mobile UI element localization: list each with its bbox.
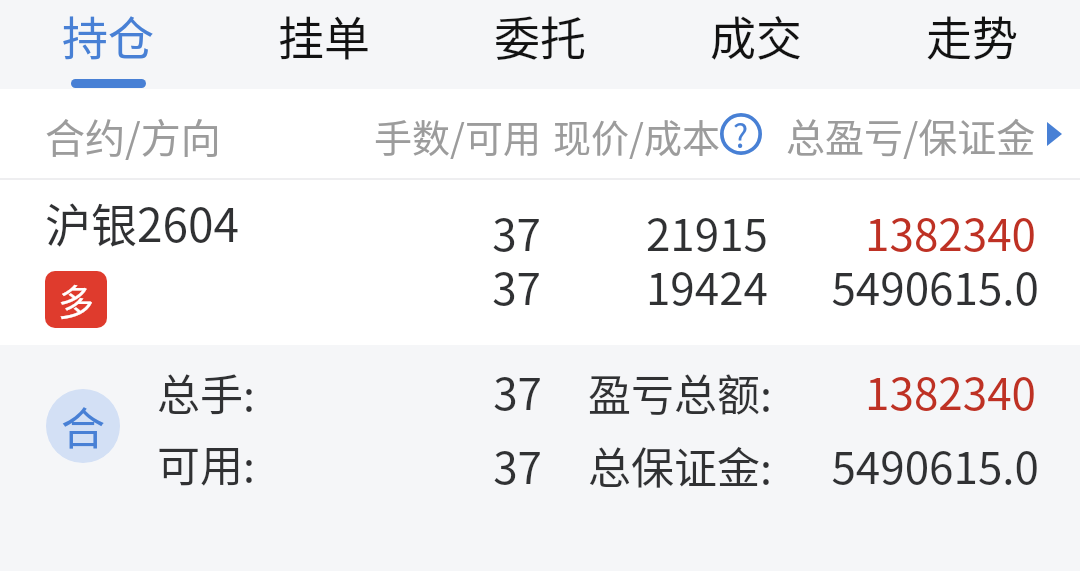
staticText: 多 [58,274,95,326]
staticText: 沪银2604 [45,189,240,256]
button[interactable]: Help, price and cost explanation [720,113,762,155]
staticText: 21915 [0,200,768,264]
staticText: 合约/方向 [45,107,221,165]
staticText: 合 [61,394,105,458]
staticText: 总盈亏/保证金 [786,107,1036,163]
button[interactable]: 走势 [864,0,1080,89]
staticText: 19424 [0,254,768,318]
staticText: 1382340 [0,359,1036,423]
staticText: 37 [0,254,541,318]
staticText: 成交 [710,2,802,69]
button[interactable]: Show more columns [1036,115,1070,153]
staticText: 5490615.0 [0,254,1039,318]
button[interactable]: 委托 [432,0,648,89]
staticText: 委托 [494,2,586,69]
button[interactable]: 持仓 [0,0,216,89]
button[interactable]: 挂单 [216,0,432,89]
staticText: 37 [0,200,541,264]
staticText: 现价/成本 [553,108,720,163]
staticText: 1382340 [0,200,1036,264]
staticText: ? [733,111,749,153]
staticText: 盈亏总额: [588,361,772,423]
button[interactable]: 合 [0,345,1080,571]
staticText: 5490615.0 [0,433,1039,497]
staticText: 走势 [926,2,1018,69]
staticText: 37 [0,359,542,423]
staticText: 持仓 [62,2,154,69]
button[interactable]: 沪银2604 [0,178,1080,345]
staticText: 总手: [157,361,255,423]
staticText: 37 [0,433,542,497]
staticText: 总保证金: [588,434,772,496]
button[interactable]: 成交 [648,0,864,89]
staticText: 可用: [157,432,255,494]
staticText: 手数/可用 [374,108,541,163]
staticText: 挂单 [278,2,370,69]
